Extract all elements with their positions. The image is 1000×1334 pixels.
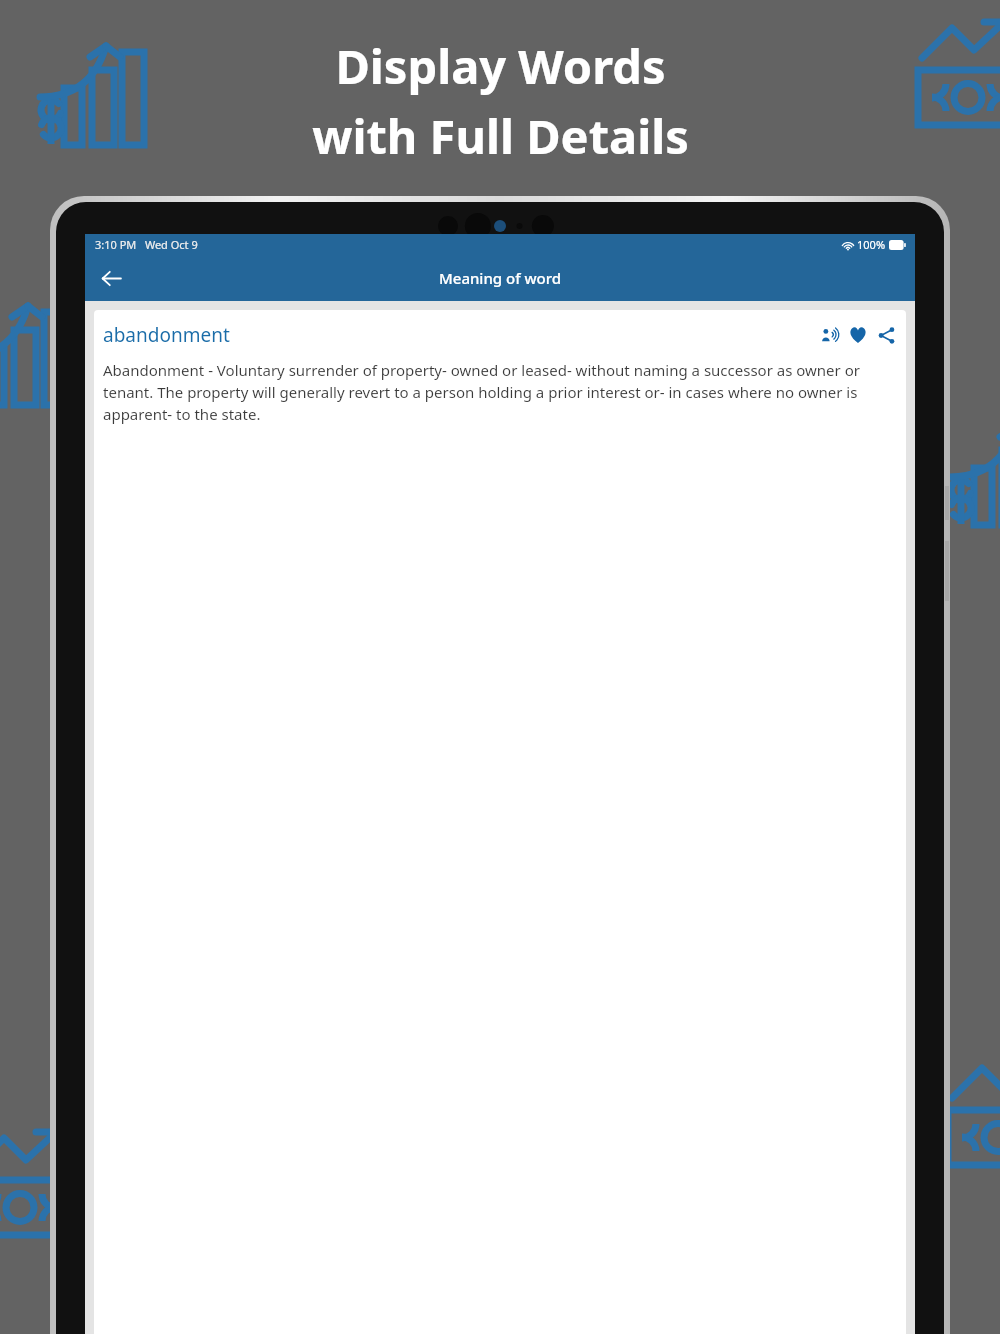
button[interactable]: Favorite <box>847 324 869 346</box>
staticText: Display Words <box>335 34 666 98</box>
staticText: with Full Details <box>312 104 689 168</box>
button[interactable]: abandonment <box>103 322 819 348</box>
staticText: Meaning of word <box>439 268 562 288</box>
button[interactable]: Speak <box>819 324 841 346</box>
staticText: 100% <box>857 237 886 252</box>
button[interactable]: Share <box>875 324 897 346</box>
staticText: 3:10 PM Wed Oct 9 <box>95 237 198 252</box>
button[interactable]: Back <box>91 258 131 298</box>
staticText: Abandonment - Voluntary surrender of pro… <box>103 360 897 425</box>
